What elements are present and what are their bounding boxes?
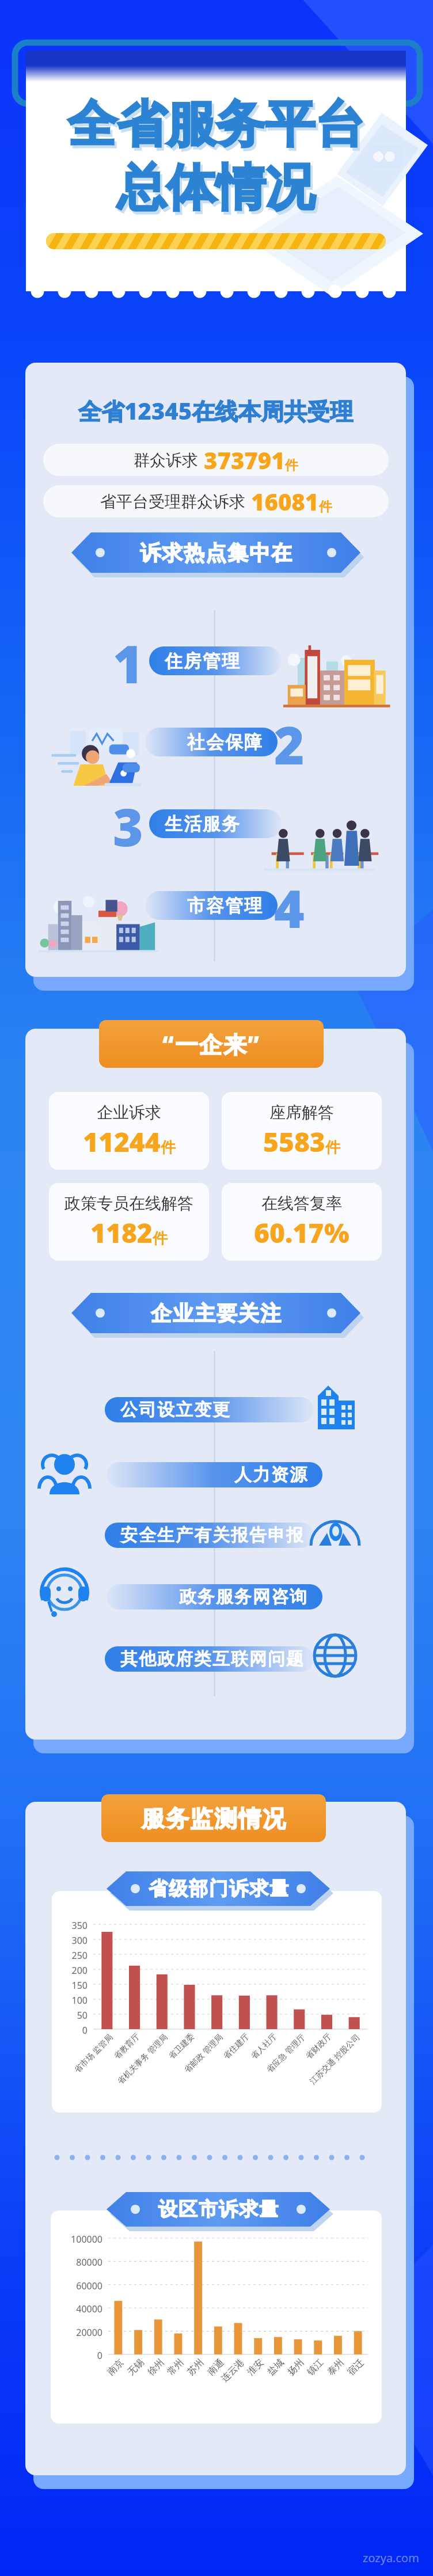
staticText: 扬州	[245, 2357, 306, 2418]
staticText: 省机关事务 管理局	[109, 2031, 170, 2092]
staticText: 省卫建委	[137, 2031, 197, 2092]
staticText: 件	[325, 1138, 340, 1157]
staticText: 安全生产有关报告申报	[120, 1524, 304, 1546]
staticText: “一企来”	[162, 1028, 260, 1060]
staticText: 江苏交通 控股公司	[301, 2031, 362, 2092]
staticText: 省邮政 管理局	[164, 2031, 225, 2092]
staticText: 企业主要关注	[150, 1300, 282, 1326]
staticText: 苏州	[145, 2357, 206, 2418]
staticText: 公司设立变更	[120, 1399, 230, 1421]
button[interactable]: 公司设立变更	[105, 1397, 314, 1422]
staticText: 省教育厅	[82, 2031, 142, 2092]
staticText: 诉求热点集中在	[139, 540, 293, 566]
button[interactable]: 企业主要关注	[71, 1293, 360, 1339]
staticText: 省应急 管理厅	[246, 2031, 307, 2092]
staticText: 住房管理	[164, 650, 240, 672]
staticText: 省财政厅	[274, 2031, 334, 2092]
button[interactable]: 群众诉求	[43, 444, 389, 476]
staticText: 镇江	[265, 2357, 326, 2418]
staticText: 无锡	[85, 2357, 146, 2418]
staticText: 3	[113, 791, 143, 862]
staticText: 200	[52, 1964, 88, 1977]
staticText: 社会保障	[187, 731, 263, 754]
staticText: 80000	[51, 2256, 102, 2269]
staticText: 250	[52, 1949, 88, 1962]
staticText: 省人社厅	[219, 2031, 279, 2092]
button[interactable]: 在线答复率	[222, 1183, 382, 1261]
staticText: 座席解答	[269, 1102, 334, 1123]
button[interactable]: “一企来”	[99, 1020, 324, 1068]
staticText: 南通	[165, 2357, 226, 2418]
staticText: 373791	[204, 444, 285, 475]
button[interactable]: 住房管理	[149, 646, 282, 675]
staticText: 盐城	[225, 2357, 286, 2418]
staticText: 0	[51, 2349, 102, 2362]
button[interactable]: 社会保障	[145, 728, 278, 756]
staticText: 南京	[65, 2357, 126, 2418]
staticText: 件	[319, 499, 332, 515]
staticText: 50	[52, 2009, 88, 2022]
staticText: 生活服务	[164, 813, 240, 835]
button[interactable]: 设区市诉求量	[107, 2192, 330, 2232]
button[interactable]: 省级部门诉求量	[107, 1871, 330, 1912]
staticText: 徐州	[105, 2357, 167, 2418]
staticText: 在线答复率	[261, 1193, 342, 1213]
staticText: 全省服务平台	[70, 96, 367, 158]
staticText: 1	[113, 628, 143, 699]
button[interactable]: 人力资源	[107, 1462, 322, 1487]
staticText: 件	[161, 1138, 176, 1157]
button[interactable]: 服务监测情况	[101, 1794, 326, 1842]
staticText: 省平台受理群众诉求	[100, 492, 245, 512]
button[interactable]: 诉求热点集中在	[71, 532, 360, 579]
staticText: 群众诉求	[134, 450, 198, 470]
staticText: 0	[52, 2024, 88, 2037]
button[interactable]: 政策专员在线解答	[49, 1183, 209, 1261]
staticText: 1182	[90, 1215, 153, 1251]
staticText: 服务监测情况	[141, 1804, 286, 1833]
staticText: 淮安	[205, 2357, 266, 2418]
staticText: 其他政府类互联网问题	[120, 1648, 304, 1670]
other: Human resources	[37, 1444, 92, 1499]
staticText: 16081	[251, 486, 319, 517]
button[interactable]: 其他政府类互联网问题	[105, 1646, 314, 1672]
staticText: 100000	[51, 2233, 102, 2246]
staticText: 11244	[83, 1124, 161, 1160]
button[interactable]: 企业诉求	[49, 1092, 209, 1170]
button[interactable]: 省平台受理群众诉求	[43, 485, 389, 518]
staticText: 件	[285, 457, 298, 474]
staticText: 政务服务网咨询	[178, 1586, 307, 1608]
other: Internet	[307, 1628, 363, 1683]
staticText: 60000	[51, 2280, 102, 2292]
staticText: 100	[52, 1994, 88, 2007]
staticText: 件	[153, 1229, 168, 1248]
staticText: 150	[52, 1979, 88, 1992]
staticText: 省级部门诉求量	[148, 1877, 289, 1901]
staticText: 市容管理	[187, 895, 263, 917]
staticText: 20000	[51, 2326, 102, 2339]
staticText: 政策专员在线解答	[64, 1193, 193, 1213]
staticText: 5583	[263, 1124, 325, 1160]
staticText: 宿迁	[305, 2357, 366, 2418]
button[interactable]: 政务服务网咨询	[107, 1584, 322, 1609]
staticText: 总体情况	[119, 159, 317, 222]
other: Safety production	[307, 1504, 363, 1559]
button[interactable]: 座席解答	[222, 1092, 382, 1170]
staticText: 60.17	[254, 1215, 324, 1251]
staticText: %	[324, 1215, 350, 1251]
button[interactable]: 生活服务	[149, 809, 282, 838]
button[interactable]: 市容管理	[145, 891, 278, 920]
staticText: 设区市诉求量	[158, 2197, 279, 2221]
button[interactable]: 安全生产有关报告申报	[105, 1523, 314, 1548]
staticText: 泰州	[285, 2357, 346, 2418]
staticText: 人力资源	[234, 1464, 307, 1486]
staticText: 总体情况	[117, 157, 315, 219]
staticText: 350	[52, 1919, 88, 1932]
staticText: 40000	[51, 2303, 102, 2315]
staticText: 4	[274, 873, 305, 943]
staticText: 全省12345在线本周共受理	[78, 395, 354, 427]
other: Service hotline	[37, 1566, 92, 1621]
staticText: 省市场 监管局	[54, 2031, 115, 2092]
staticText: 常州	[125, 2357, 186, 2418]
staticText: 300	[52, 1934, 88, 1947]
staticText: 企业诉求	[97, 1102, 161, 1123]
